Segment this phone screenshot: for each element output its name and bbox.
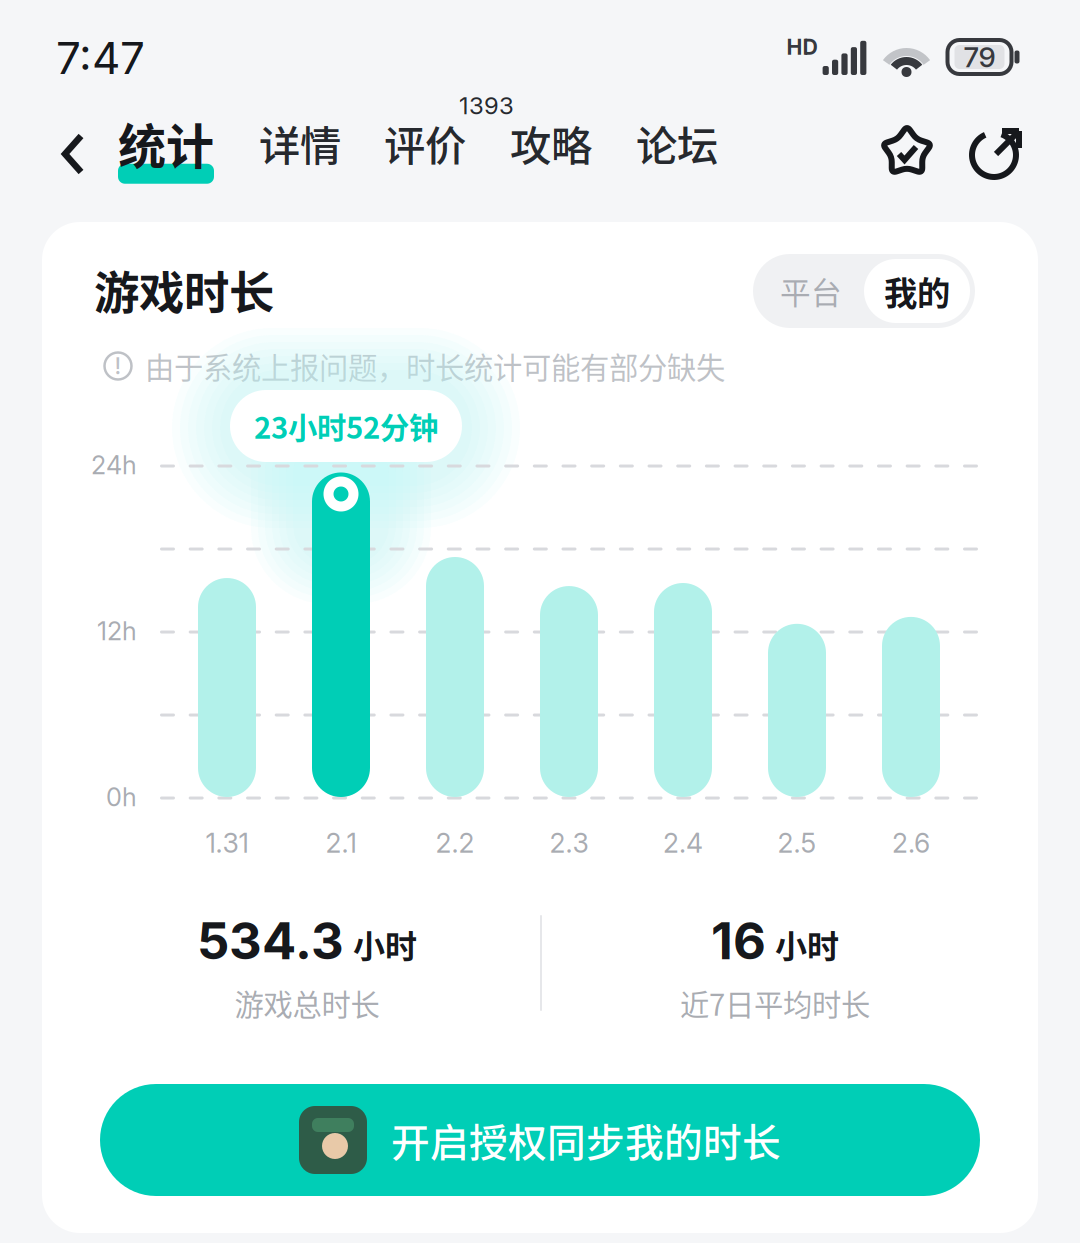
- button[interactable]: 我的: [864, 259, 970, 323]
- button[interactable]: 统计: [106, 109, 226, 201]
- staticText: 1.31: [205, 827, 248, 859]
- staticText: 统计: [118, 108, 214, 178]
- staticText: 由于系统上报问题，时长统计可能有部分缺失: [145, 345, 725, 387]
- staticText: HD: [786, 34, 817, 60]
- button[interactable]: 开启授权同步我的时长: [100, 1084, 980, 1196]
- staticText: 2.1: [325, 827, 356, 859]
- button[interactable]: 攻略: [491, 109, 611, 201]
- staticText: 评价: [384, 113, 466, 173]
- staticText: 7:47: [56, 31, 145, 85]
- staticText: 平台: [780, 269, 842, 313]
- button[interactable]: 评价: [365, 109, 485, 201]
- staticText: 攻略: [510, 113, 592, 173]
- button[interactable]: 分享: [968, 122, 1028, 184]
- staticText: 论坛: [636, 113, 718, 173]
- staticText: !: [114, 352, 121, 380]
- staticText: 2.2: [435, 827, 474, 859]
- staticText: 534.3: [197, 910, 344, 971]
- staticText: 详情: [259, 113, 341, 173]
- staticText: 1393: [459, 91, 514, 120]
- button[interactable]: 收藏: [878, 122, 938, 184]
- button[interactable]: 详情: [240, 109, 360, 201]
- staticText: 游戏总时长: [234, 982, 379, 1024]
- button[interactable]: 论坛: [617, 109, 737, 201]
- staticText: 79: [963, 40, 995, 74]
- staticText: 2.3: [549, 827, 588, 859]
- staticText: 2.6: [892, 827, 930, 859]
- button[interactable]: 返回: [46, 119, 102, 189]
- staticText: 开启授权同步我的时长: [391, 1112, 781, 1168]
- staticText: 小时: [775, 921, 839, 967]
- staticText: 23小时52分钟: [254, 405, 438, 447]
- staticText: 游戏时长: [94, 257, 274, 323]
- staticText: 我的: [884, 267, 950, 315]
- staticText: 小时: [353, 921, 417, 967]
- staticText: 24h: [91, 450, 137, 480]
- staticText: 12h: [97, 616, 137, 646]
- staticText: 2.5: [777, 827, 816, 859]
- staticText: 2.4: [663, 827, 703, 859]
- staticText: 0h: [106, 782, 137, 812]
- staticText: 16: [711, 910, 766, 971]
- staticText: 近7日平均时长: [680, 982, 870, 1024]
- button[interactable]: 平台: [758, 259, 864, 323]
